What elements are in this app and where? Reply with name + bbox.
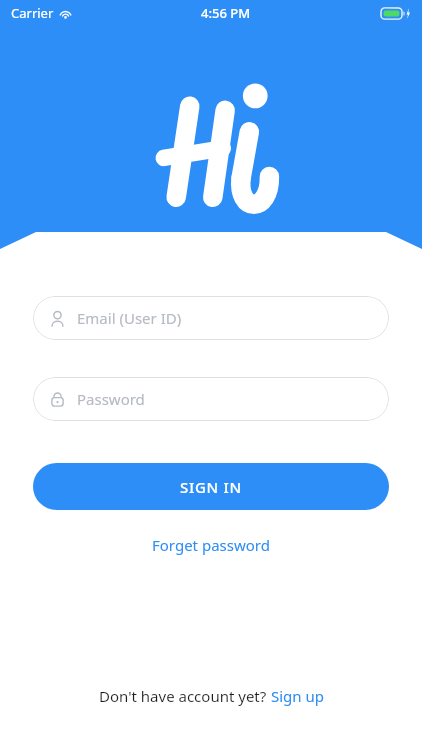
button[interactable]: Password — [33, 377, 389, 421]
button[interactable]: Sign up — [271, 686, 324, 706]
button[interactable]: Email (User ID) — [33, 296, 389, 340]
staticText: Carrier — [11, 4, 54, 22]
staticText: Don't have account yet? — [99, 686, 271, 706]
staticText: 4:56 PM — [201, 4, 251, 22]
staticText: Email (User ID) — [77, 308, 182, 328]
button[interactable]: SIGN IN — [33, 463, 389, 510]
staticText: SIGN IN — [180, 477, 242, 497]
staticText: Sign up — [271, 686, 324, 706]
staticText: Forget password — [152, 535, 270, 555]
staticText: Password — [77, 389, 145, 409]
button[interactable]: Forget password — [142, 530, 280, 560]
